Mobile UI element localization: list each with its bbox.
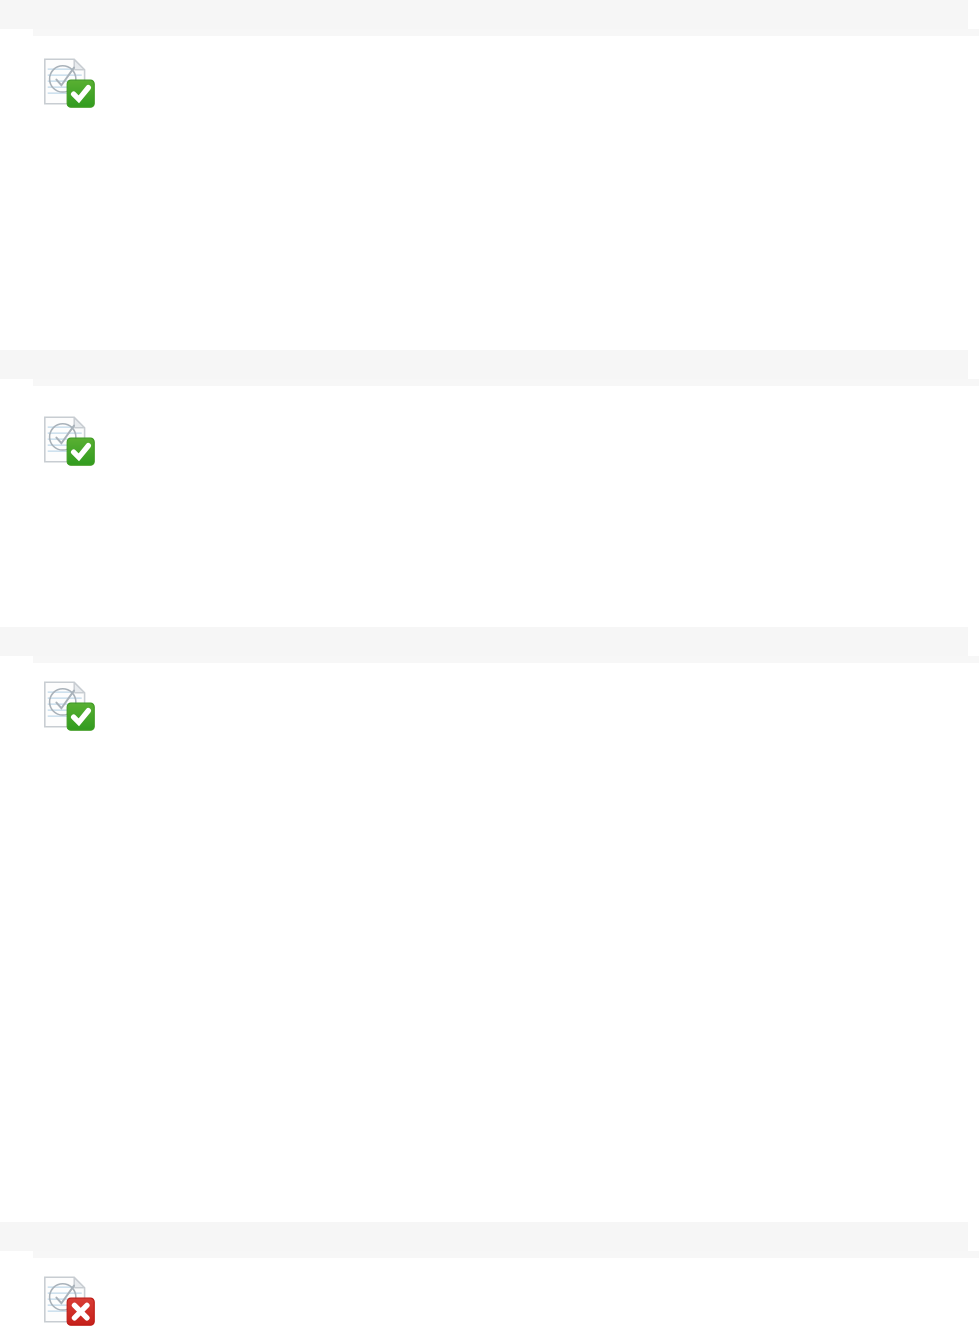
button[interactable]: Document validated <box>43 680 95 732</box>
button[interactable]: Document failed <box>43 1275 95 1326</box>
button[interactable]: Document validated <box>43 415 95 467</box>
button[interactable]: Document validated <box>43 57 95 109</box>
